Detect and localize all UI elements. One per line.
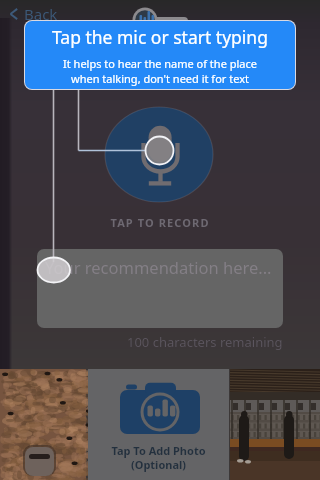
staticText: Your recommendation here... (45, 256, 272, 278)
button[interactable] (230, 369, 320, 480)
button[interactable]: Tap To Add Photo (Optional) (88, 369, 229, 480)
button[interactable]: Tap to record (105, 107, 213, 202)
staticText: Tap To Add Photo (Optional) (111, 443, 206, 472)
staticText: TAP TO RECORD (0, 215, 320, 230)
staticText: It helps to hear the name of the place w… (63, 56, 257, 86)
button[interactable]: Tap the mic or start typing (25, 21, 295, 89)
other: Back (6, 6, 22, 22)
button[interactable] (0, 369, 86, 480)
button[interactable]: Your recommendation here... (37, 249, 283, 328)
staticText: Back (24, 4, 58, 24)
staticText: Tap the mic or start typing (52, 25, 268, 49)
button[interactable]: Back (6, 4, 58, 24)
staticText: 100 characters remaining (127, 333, 283, 351)
